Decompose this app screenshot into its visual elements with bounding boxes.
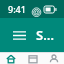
- button[interactable]: Home: [0, 53, 22, 64]
- staticText: Schedule: [36, 26, 56, 44]
- staticText: 9:41: [8, 3, 26, 15]
- button[interactable]: Profile: [43, 53, 64, 64]
- button[interactable]: Menu: [8, 24, 30, 46]
- button[interactable]: Calendar: [22, 53, 43, 64]
